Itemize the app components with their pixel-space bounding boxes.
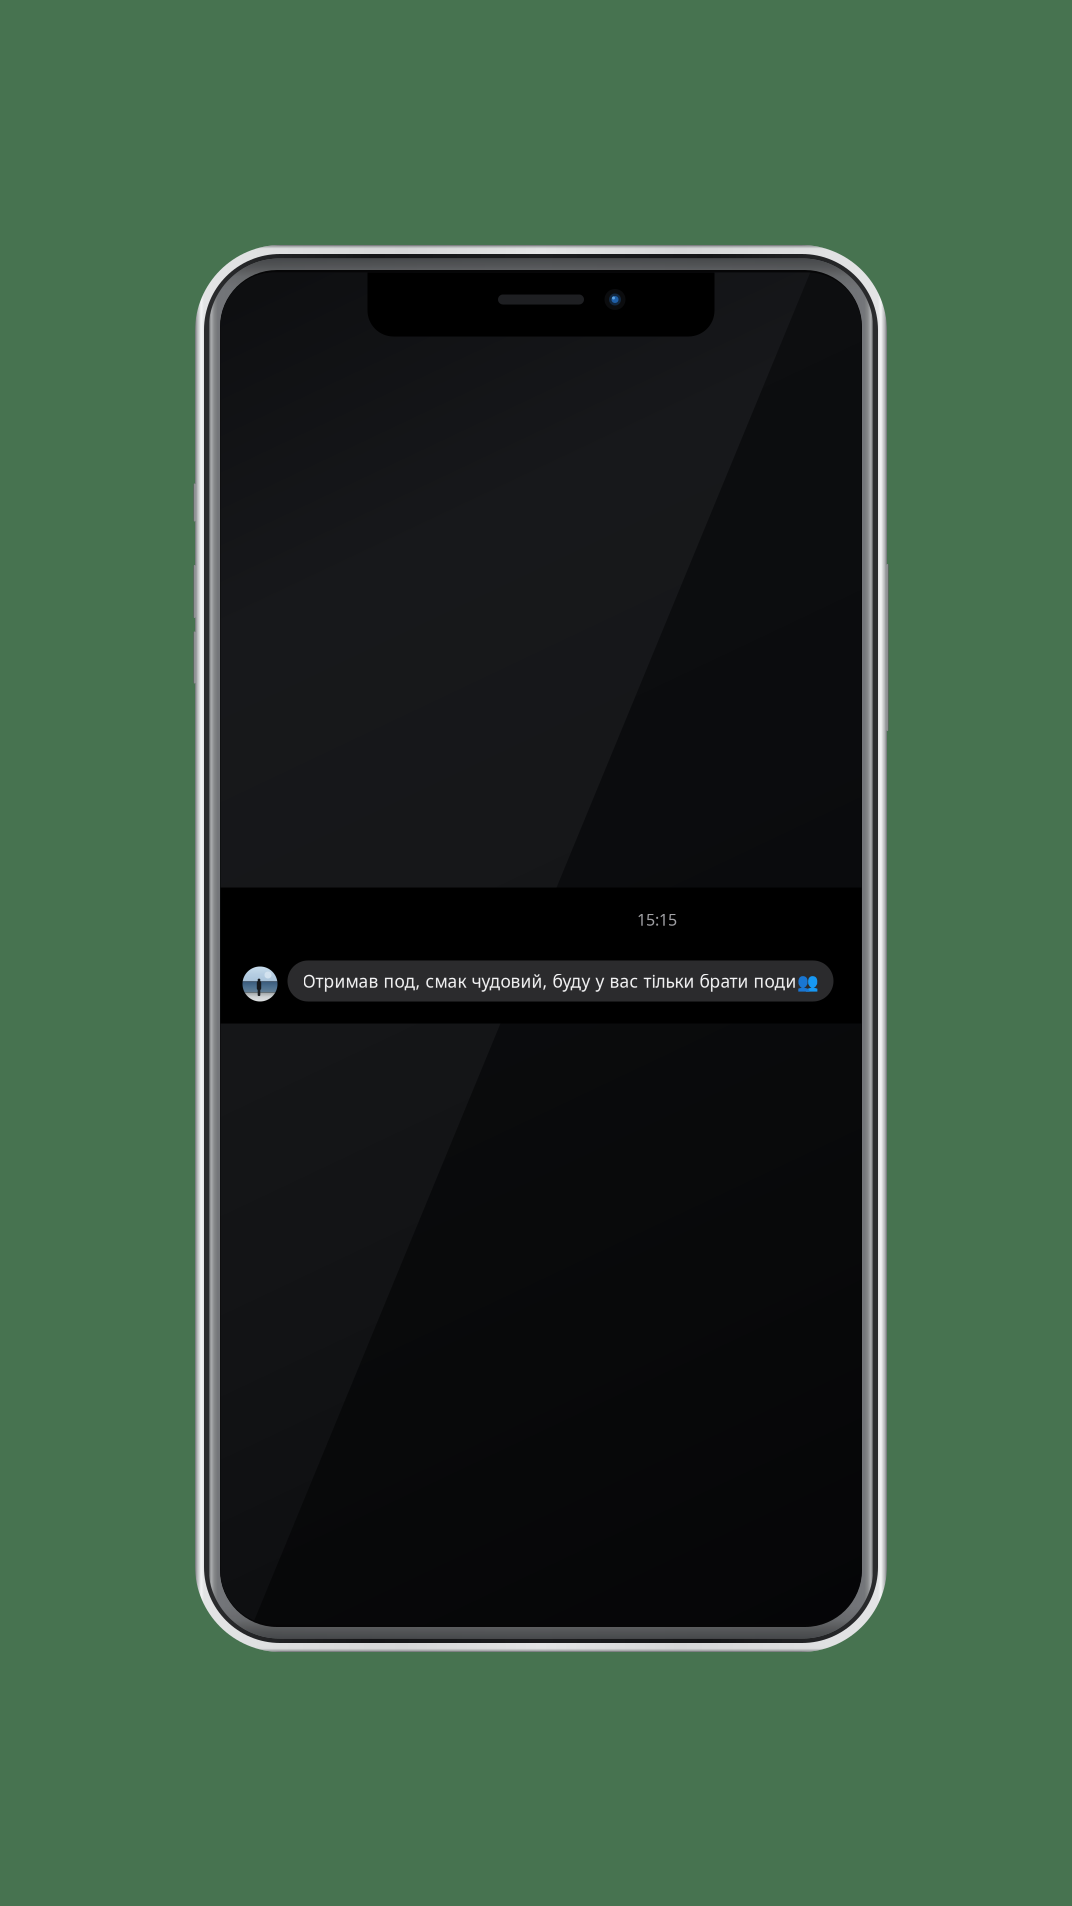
staticText: Отримав под, смак чудовий, буду у вас ті…	[302, 969, 818, 992]
button[interactable]: Отримав под, смак чудовий, буду у вас ті…	[220, 960, 861, 1001]
staticText: 15:15	[637, 909, 677, 930]
